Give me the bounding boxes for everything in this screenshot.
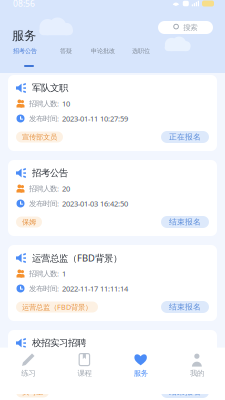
staticText: 发布时间: xyxy=(29,283,59,294)
button[interactable]: 招考公告 xyxy=(13,47,37,55)
button[interactable]: 搜索 xyxy=(158,21,213,34)
staticText: 服务 xyxy=(134,369,148,378)
staticText: 招考公告 xyxy=(32,167,68,179)
button[interactable]: 结束报名 xyxy=(161,216,209,228)
staticText: 发布时间: xyxy=(29,113,59,124)
staticText: 校招实习招聘 xyxy=(32,337,86,349)
button[interactable]: 保姆 xyxy=(16,216,42,227)
staticText: 结束报名 xyxy=(169,302,201,312)
staticText: 招聘人数: xyxy=(29,183,59,194)
staticText: 保姆 xyxy=(22,217,36,227)
button[interactable]: 实习生 xyxy=(16,386,49,397)
button[interactable]: 服务 xyxy=(112,348,169,384)
staticText: 发布时间: xyxy=(29,198,59,209)
staticText: 招聘人数: xyxy=(29,353,59,364)
staticText: 申论批改 xyxy=(91,47,115,55)
staticText: 招考公告 xyxy=(13,47,37,55)
button[interactable]: 申论批改 xyxy=(91,47,115,55)
button[interactable]: 选职位 xyxy=(132,47,150,55)
staticText: 1 xyxy=(62,268,66,279)
staticText: 运营总监（FBD背景） xyxy=(32,252,122,264)
staticText: 10 xyxy=(62,98,70,109)
button[interactable]: 正在报名 xyxy=(161,131,209,143)
staticText: 服务 xyxy=(12,28,36,43)
staticText: 我的 xyxy=(190,369,204,378)
staticText: 发布时间: xyxy=(29,368,59,379)
staticText: 宣传部文员 xyxy=(22,132,57,142)
staticText: 20 xyxy=(62,183,70,194)
staticText: 08:56 xyxy=(13,0,35,9)
button[interactable]: 答疑 xyxy=(60,47,72,55)
staticText: 实习生 xyxy=(22,387,43,397)
staticText: 答疑 xyxy=(60,47,72,55)
button[interactable]: 运营总监（FBD背景） xyxy=(16,301,98,312)
button[interactable]: 宣传部文员 xyxy=(16,131,63,142)
staticText: 招聘人数: xyxy=(29,268,59,279)
staticText: 2022-11-17 11:11:14 xyxy=(62,283,128,294)
button[interactable]: 结束报名 xyxy=(161,301,209,313)
staticText: 练习 xyxy=(21,369,35,378)
staticText: 2022-10-02 09:11:00 xyxy=(62,368,128,379)
staticText: 招聘人数: xyxy=(29,98,59,109)
button[interactable]: 练习 xyxy=(0,348,56,384)
staticText: 2023-01-11 10:27:59 xyxy=(62,113,128,124)
staticText: 结束报名 xyxy=(169,387,201,397)
staticText: 2023-01-03 16:42:50 xyxy=(62,198,128,209)
staticText: 选职位 xyxy=(132,47,150,55)
staticText: 搜索 xyxy=(183,23,197,32)
staticText: 正在报名 xyxy=(169,132,201,142)
staticText: 结束报名 xyxy=(169,217,201,227)
button[interactable]: 我的 xyxy=(169,348,225,384)
staticText: 课程 xyxy=(77,369,91,378)
staticText: 军队文职 xyxy=(32,82,68,94)
staticText: 运营总监（FBD背景） xyxy=(22,302,92,312)
button[interactable]: 课程 xyxy=(56,348,112,384)
button[interactable]: 结束报名 xyxy=(161,386,209,398)
